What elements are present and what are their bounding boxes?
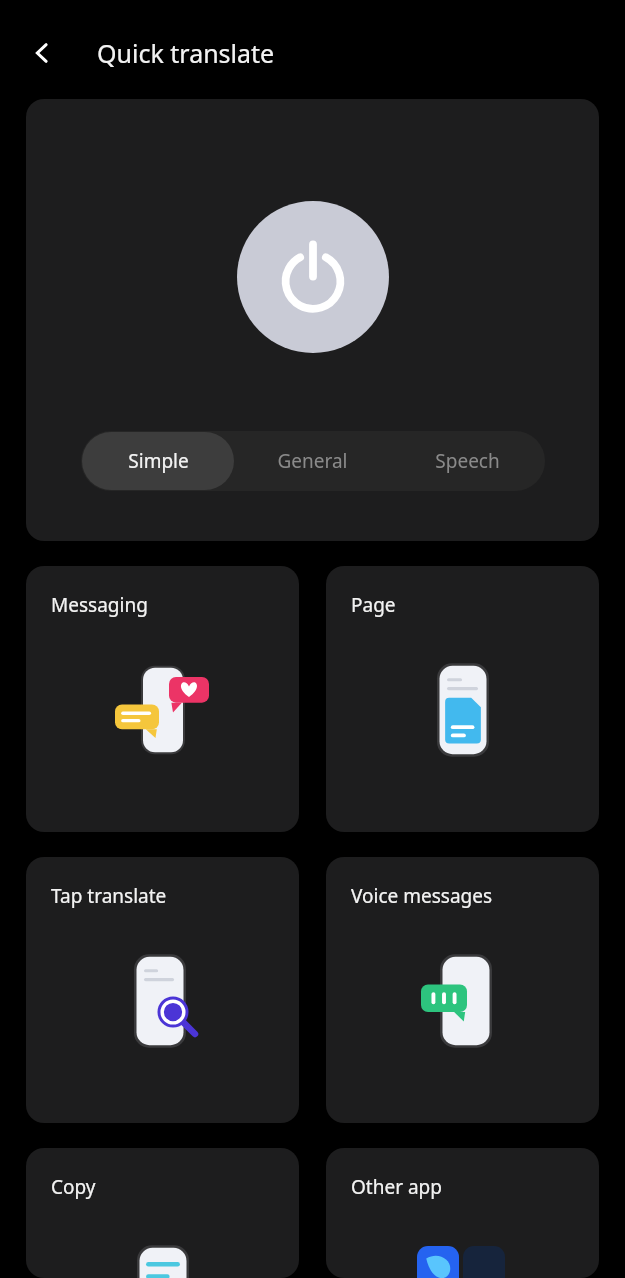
staticText: Copy <box>51 1174 96 1200</box>
button[interactable]: Copy <box>26 1148 299 1278</box>
button[interactable]: Messaging <box>26 566 299 832</box>
staticText: Quick translate <box>97 36 275 70</box>
button[interactable]: General <box>236 432 389 490</box>
staticText: Messaging <box>51 592 148 618</box>
button[interactable]: Power toggle <box>237 201 389 353</box>
button[interactable]: Back <box>20 31 64 75</box>
button[interactable]: Simple <box>82 432 234 490</box>
button[interactable]: Tap translate <box>26 857 299 1123</box>
staticText: Other app <box>351 1174 442 1200</box>
button[interactable]: Voice messages <box>326 857 599 1123</box>
button[interactable]: Other app <box>326 1148 599 1278</box>
button[interactable]: Page <box>326 566 599 832</box>
staticText: General <box>277 448 348 474</box>
button[interactable]: Speech <box>391 432 544 490</box>
staticText: Speech <box>435 448 500 474</box>
staticText: Tap translate <box>51 883 167 909</box>
staticText: Voice messages <box>351 883 493 909</box>
staticText: Simple <box>128 448 189 474</box>
staticText: Page <box>351 592 396 618</box>
